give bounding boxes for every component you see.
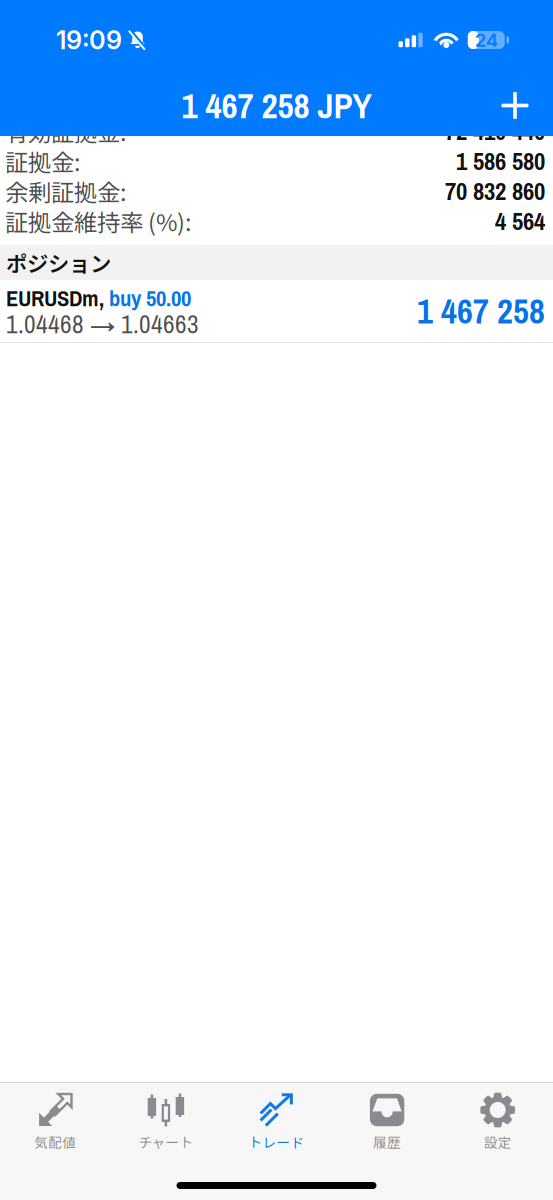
staticText: 1 467 258 — [417, 288, 545, 334]
staticText: 設定 — [484, 1132, 512, 1152]
staticText: チャート — [138, 1132, 193, 1152]
button[interactable]: チャート — [111, 1083, 221, 1159]
staticText: 24 — [475, 29, 498, 51]
staticText: 履歴 — [373, 1132, 401, 1152]
button[interactable]: EURUSDm, — [0, 280, 553, 342]
button[interactable]: 履歴 — [332, 1083, 442, 1159]
staticText: 72 419 440 — [445, 114, 545, 148]
staticText: 有効証拠金: — [5, 114, 126, 148]
staticText: EURUSDm, — [6, 283, 104, 313]
staticText: 4 564 — [495, 204, 545, 238]
staticText: 余剰証拠金: — [5, 174, 126, 208]
staticText: 1.04468 → 1.04663 — [6, 307, 199, 341]
button[interactable]: 設定 — [442, 1083, 553, 1159]
button[interactable]: 気配値 — [0, 1083, 111, 1159]
staticText: 1 586 580 — [456, 144, 545, 178]
staticText: トレード — [248, 1132, 304, 1152]
staticText: 1 467 258 JPY — [181, 82, 371, 129]
staticText: ポジション — [6, 247, 111, 278]
staticText: 70 832 860 — [445, 174, 545, 208]
staticText: 証拠金維持率 (%): — [5, 204, 191, 238]
staticText: 19:09 — [56, 25, 122, 55]
button[interactable]: New order — [488, 78, 542, 132]
button[interactable]: トレード — [221, 1083, 332, 1159]
staticText: 証拠金: — [5, 144, 80, 178]
staticText: buy 50.00 — [104, 283, 191, 313]
staticText: 気配値 — [34, 1132, 76, 1152]
